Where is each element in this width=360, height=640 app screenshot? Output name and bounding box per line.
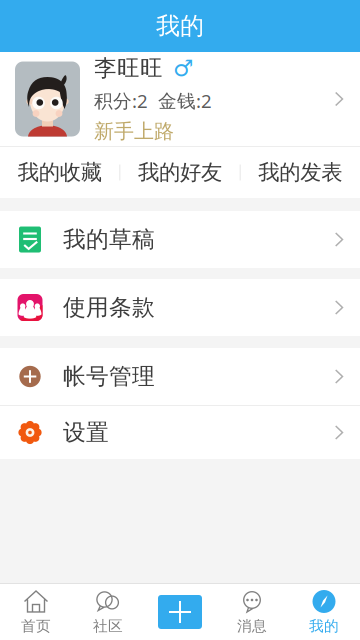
button[interactable]: 李旺旺 xyxy=(0,52,360,146)
staticText: 设置 xyxy=(63,419,109,446)
button[interactable]: 我的 xyxy=(288,584,360,640)
button[interactable]: 我的好友 xyxy=(120,147,240,198)
button[interactable]: 发布 xyxy=(144,584,216,640)
staticText: 新手上路 xyxy=(94,119,174,144)
staticText: 消息 xyxy=(237,617,267,635)
staticText: 积分:2 金钱:2 xyxy=(94,88,212,113)
button[interactable]: 我的收藏 xyxy=(0,147,119,198)
staticText: 我的好友 xyxy=(138,159,222,186)
button[interactable]: 使用条款 xyxy=(0,279,360,336)
staticText: 我的发表 xyxy=(258,159,342,186)
staticText: 我的收藏 xyxy=(18,159,102,186)
staticText: 社区 xyxy=(93,617,123,635)
staticText: 首页 xyxy=(21,617,51,635)
button[interactable]: 社区 xyxy=(72,584,144,640)
staticText: 李旺旺 xyxy=(94,54,163,82)
staticText: 我的草稿 xyxy=(63,226,155,253)
staticText: 帐号管理 xyxy=(63,363,155,390)
button[interactable]: 帐号管理 xyxy=(0,348,360,405)
button[interactable]: 我的草稿 xyxy=(0,211,360,268)
staticText: 我的 xyxy=(309,617,339,635)
button[interactable]: 首页 xyxy=(0,584,72,640)
button[interactable]: 我的发表 xyxy=(241,147,360,198)
staticText: 使用条款 xyxy=(63,294,155,321)
staticText: 我的 xyxy=(156,11,204,41)
button[interactable]: 消息 xyxy=(216,584,288,640)
button[interactable]: 设置 xyxy=(0,406,360,459)
staticText: ♂ xyxy=(173,55,193,81)
